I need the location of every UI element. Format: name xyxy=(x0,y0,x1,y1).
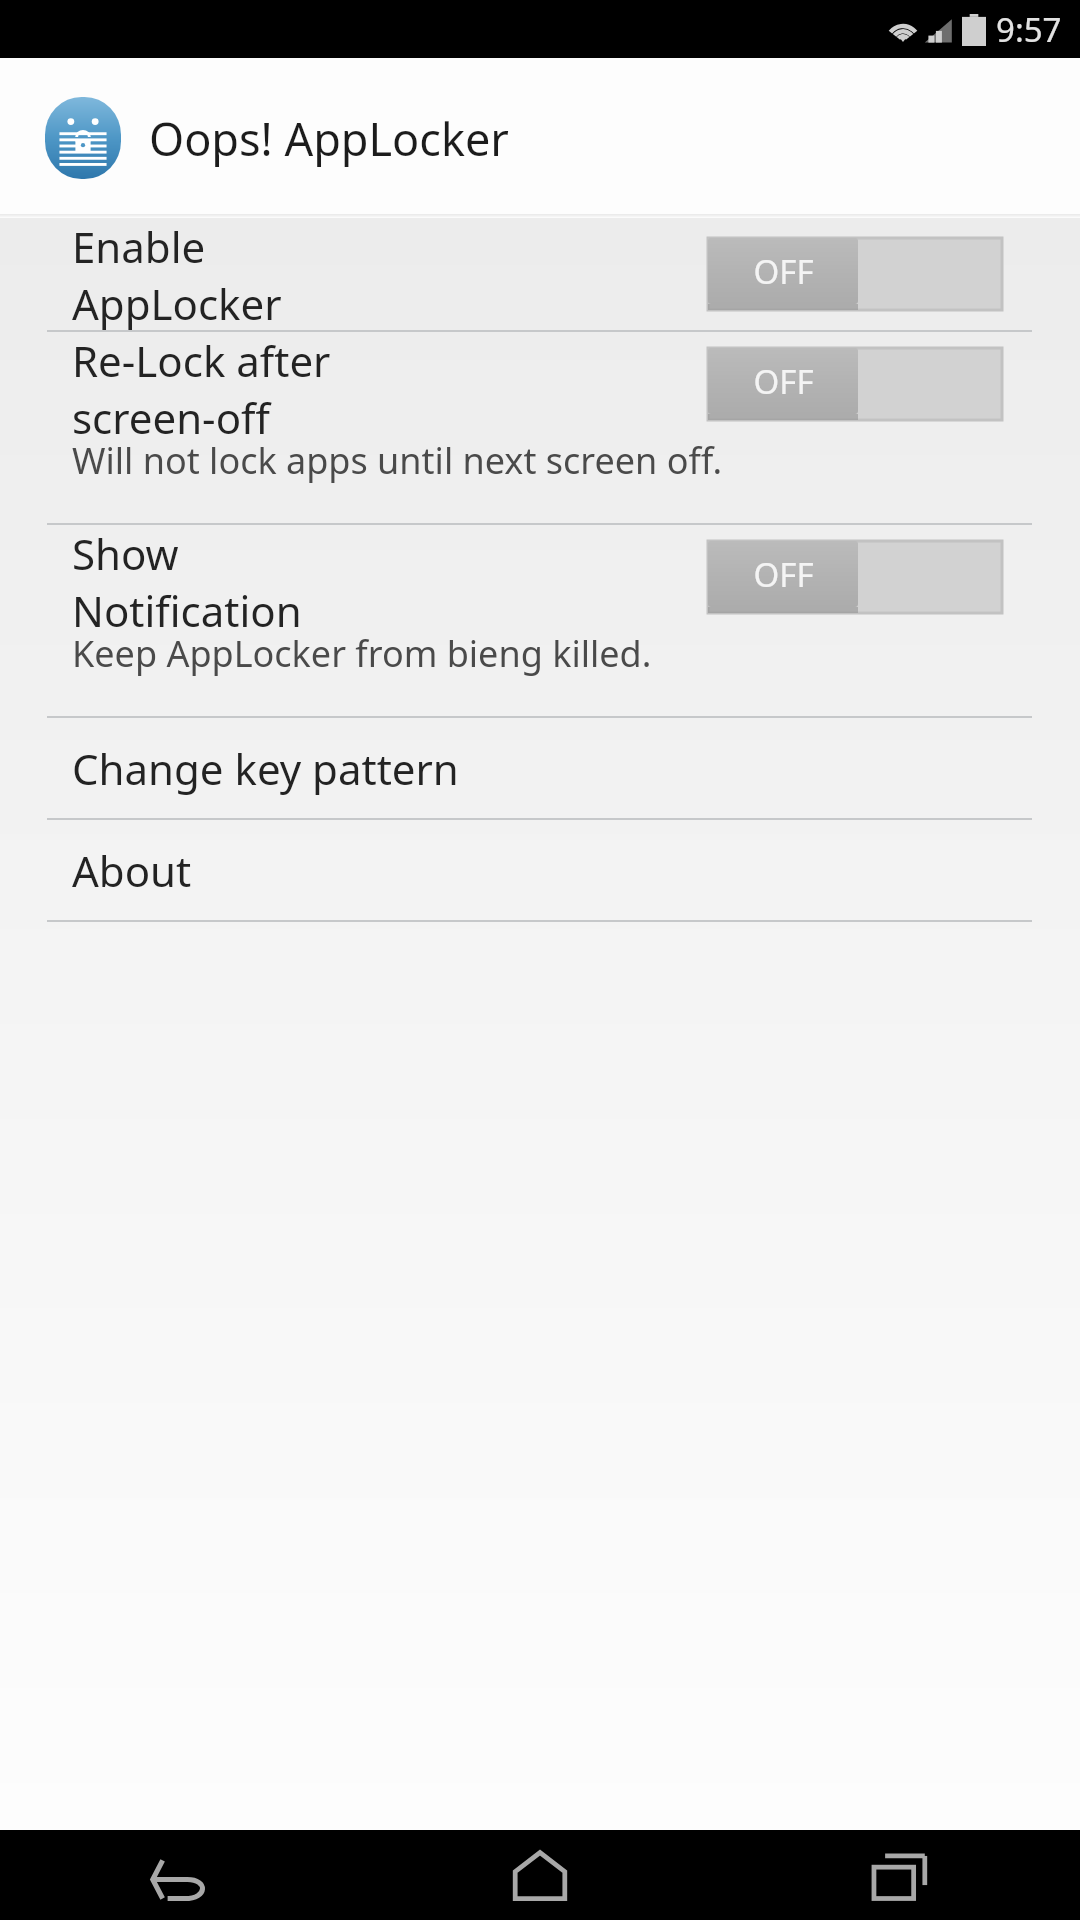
staticText: 9:57 xyxy=(996,7,1062,52)
button[interactable]: Toggle off xyxy=(708,541,1002,613)
button[interactable]: Toggle off xyxy=(708,348,1002,420)
button[interactable]: Enable AppLocker xyxy=(0,218,1080,332)
button[interactable]: Change key pattern xyxy=(0,718,1080,820)
staticText: OFF xyxy=(753,552,814,597)
staticText: Keep AppLocker from bieng killed. xyxy=(72,629,652,678)
staticText: About xyxy=(72,842,192,899)
staticText: OFF xyxy=(753,359,814,404)
button[interactable]: Re-Lock after screen-off xyxy=(0,332,1080,525)
staticText: Oops! AppLocker xyxy=(149,108,509,169)
button[interactable]: About xyxy=(0,820,1080,922)
staticText: Change key pattern xyxy=(72,740,459,797)
staticText: Enable AppLocker xyxy=(72,218,354,330)
staticText: Re-Lock after screen-off xyxy=(72,332,354,436)
button[interactable]: Recent apps xyxy=(720,1830,1080,1920)
button[interactable]: Back xyxy=(0,1830,360,1920)
staticText: Show Notification xyxy=(72,525,354,629)
staticText: Will not lock apps until next screen off… xyxy=(72,436,723,485)
button[interactable]: Toggle off xyxy=(708,238,1002,310)
staticText: OFF xyxy=(753,249,814,294)
button[interactable]: Show Notification xyxy=(0,525,1080,718)
button[interactable]: Home xyxy=(360,1830,720,1920)
